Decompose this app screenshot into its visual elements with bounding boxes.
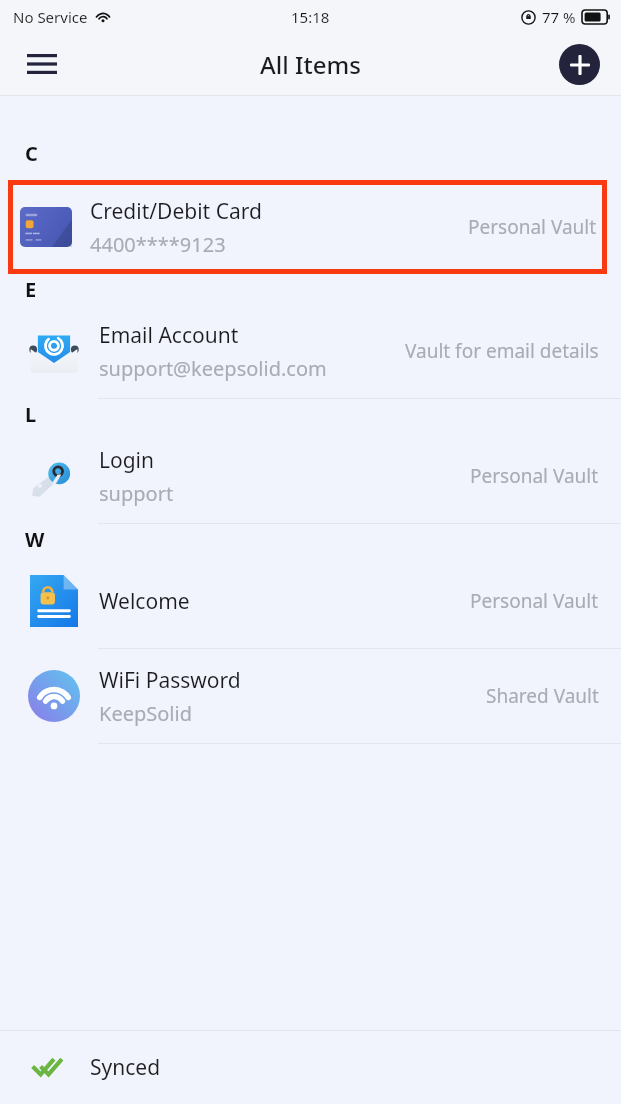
button[interactable]: Email Account — [0, 304, 621, 399]
staticText: 15:18 — [291, 7, 330, 27]
staticText: 4400****9123 — [90, 231, 226, 258]
staticText: 77 % — [542, 7, 576, 27]
staticText: Credit/Debit Card — [90, 197, 262, 226]
staticText: Login — [99, 446, 155, 475]
button[interactable]: Menu — [20, 42, 64, 86]
other: Synced — [32, 1050, 68, 1086]
staticText: All Items — [260, 48, 361, 81]
staticText: E — [25, 276, 37, 303]
staticText: WiFi Password — [99, 666, 241, 695]
staticText: Synced — [90, 1053, 161, 1082]
staticText: support — [99, 480, 174, 507]
button[interactable]: Credit/Debit Card — [8, 180, 607, 274]
staticText: Shared Vault — [486, 683, 599, 709]
button[interactable]: Add item — [559, 44, 600, 85]
staticText: Personal Vault — [468, 214, 597, 240]
staticText: W — [25, 526, 45, 553]
button[interactable]: Login — [0, 429, 621, 524]
staticText: support@keepsolid.com — [99, 355, 327, 382]
staticText: Vault for email details — [405, 338, 599, 364]
staticText: No Service — [13, 7, 88, 27]
staticText: Welcome — [99, 587, 190, 616]
staticText: L — [25, 401, 37, 428]
staticText: Personal Vault — [470, 463, 599, 489]
staticText: Email Account — [99, 321, 239, 350]
staticText: C — [25, 140, 38, 167]
button[interactable]: Welcome — [0, 554, 621, 649]
staticText: KeepSolid — [99, 700, 192, 727]
staticText: Personal Vault — [470, 588, 599, 614]
button[interactable]: WiFi Password — [0, 649, 621, 744]
